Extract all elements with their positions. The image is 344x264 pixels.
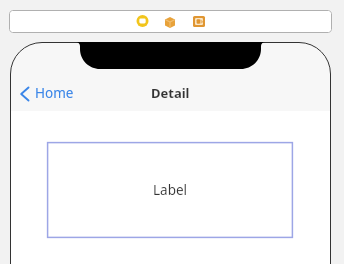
other: Variants [193, 16, 205, 27]
button[interactable]: Label [47, 142, 293, 238]
staticText: Detail [151, 84, 190, 102]
staticText: Home [35, 84, 74, 102]
other: Inspect [165, 17, 175, 28]
other: Live preview [136, 15, 149, 27]
staticText: Label [153, 181, 188, 199]
button[interactable]: Back to Home [20, 85, 74, 103]
